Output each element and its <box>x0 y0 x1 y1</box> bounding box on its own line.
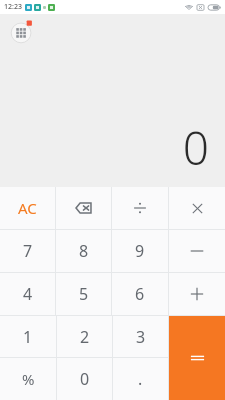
button[interactable]: Multiply <box>169 187 225 229</box>
staticText: . <box>138 368 143 390</box>
staticText: 0 <box>182 116 209 179</box>
staticText: 1 <box>23 326 33 348</box>
staticText: 2 <box>80 326 90 348</box>
button[interactable]: Equals <box>169 316 225 400</box>
staticText: 5 <box>79 283 89 305</box>
button[interactable]: AC <box>0 187 55 229</box>
button[interactable]: Backspace <box>56 187 111 229</box>
button[interactable]: 1 <box>0 316 56 357</box>
button[interactable]: 6 <box>112 273 168 315</box>
staticText: AC <box>18 198 37 218</box>
staticText: 12:23 <box>4 2 22 12</box>
staticText: 3 <box>136 326 146 348</box>
button[interactable]: 4 <box>0 273 55 315</box>
button[interactable]: 3 <box>113 316 168 357</box>
button[interactable]: % <box>0 358 56 400</box>
button[interactable]: 5 <box>56 273 111 315</box>
staticText: 8 <box>79 240 89 262</box>
staticText: % <box>22 369 35 389</box>
staticText: 0 <box>80 368 90 390</box>
button[interactable]: App shortcuts <box>9 19 35 45</box>
button[interactable]: Divide <box>112 187 168 229</box>
button[interactable]: 7 <box>0 230 55 272</box>
staticText: 4 <box>23 283 33 305</box>
button[interactable]: 9 <box>112 230 168 272</box>
staticText: 7 <box>23 240 33 262</box>
button[interactable]: 8 <box>56 230 111 272</box>
staticText: 9 <box>135 240 145 262</box>
button[interactable]: 0 <box>57 358 112 400</box>
staticText: 6 <box>135 283 145 305</box>
button[interactable]: Plus <box>169 273 225 315</box>
button[interactable]: . <box>113 358 168 400</box>
button[interactable]: Minus <box>169 230 225 272</box>
button[interactable]: 2 <box>57 316 112 357</box>
